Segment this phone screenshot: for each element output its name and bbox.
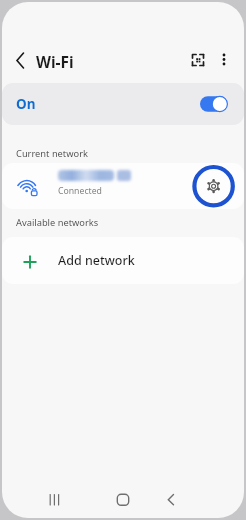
- button[interactable]: [148, 486, 204, 516]
- staticText: Available networks: [16, 216, 99, 229]
- button[interactable]: [188, 50, 210, 72]
- staticText: Wi-Fi: [36, 51, 74, 72]
- staticText: On: [16, 95, 36, 113]
- button[interactable]: Add network: [2, 237, 244, 284]
- staticText: Current network: [16, 147, 88, 160]
- staticText: Connected: [58, 185, 102, 197]
- button[interactable]: [10, 47, 38, 75]
- button[interactable]: [198, 172, 229, 203]
- staticText: Add network: [58, 252, 135, 269]
- button[interactable]: [32, 486, 88, 516]
- button[interactable]: [97, 486, 153, 516]
- button[interactable]: Connected: [2, 163, 244, 209]
- button[interactable]: [214, 46, 236, 74]
- button[interactable]: On: [2, 83, 244, 125]
